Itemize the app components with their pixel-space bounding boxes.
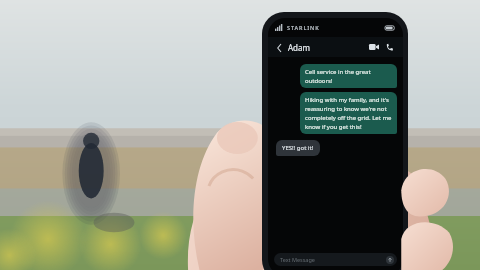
staticText: Hiking with my family, and it's reassuri… (305, 96, 392, 130)
staticText: Cell service in the great outdoors! (305, 68, 392, 84)
staticText: Adam (288, 42, 310, 53)
button[interactable]: Text Message (274, 253, 397, 266)
staticText: Text Message (280, 256, 315, 263)
button[interactable]: Hiking with my family, and it's reassuri… (300, 92, 397, 134)
button[interactable]: Video call (367, 40, 381, 54)
staticText: YES!! got it! (282, 144, 314, 152)
button[interactable]: Back (274, 42, 285, 53)
button[interactable]: Cell service in the great outdoors! (300, 64, 397, 88)
button[interactable]: Call (383, 40, 397, 54)
staticText: STARLINK (287, 24, 320, 31)
button[interactable]: YES!! got it! (276, 140, 320, 156)
